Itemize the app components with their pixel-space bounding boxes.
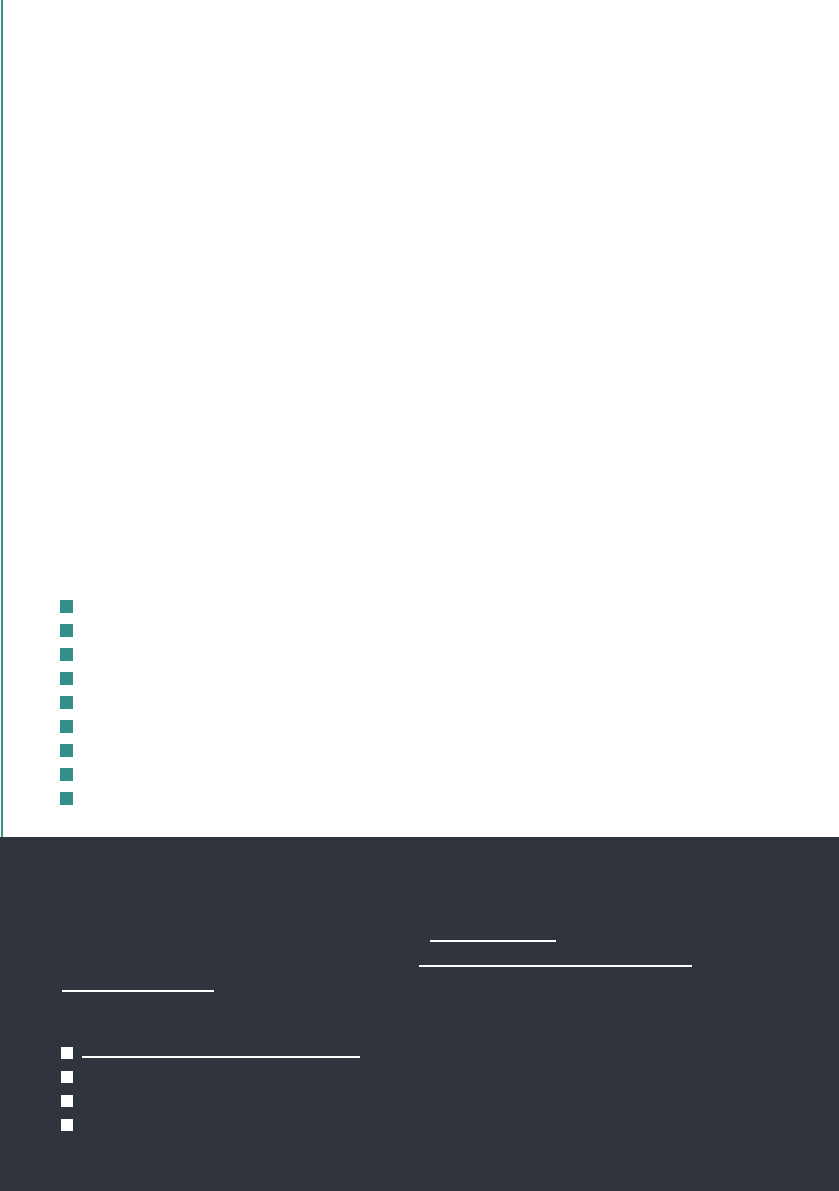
button[interactable]: List item 6: [60, 720, 360, 744]
button[interactable]: Footer item 3: [61, 1095, 381, 1119]
button[interactable]: List item 3: [60, 648, 360, 672]
button[interactable]: List item 4: [60, 672, 360, 696]
button[interactable]: List item 9: [60, 792, 360, 816]
button[interactable]: List item 1: [60, 600, 360, 624]
button[interactable]: Footer item 4: [61, 1119, 381, 1143]
button[interactable]: List item 8: [60, 768, 360, 792]
button[interactable]: Footer item 1: [61, 1047, 381, 1071]
button[interactable]: List item 2: [60, 624, 360, 648]
button[interactable]: Footer item 2: [61, 1071, 381, 1095]
button[interactable]: List item 5: [60, 696, 360, 720]
button[interactable]: List item 7: [60, 744, 360, 768]
